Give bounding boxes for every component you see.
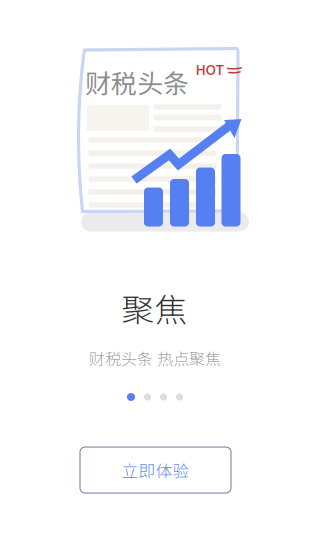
staticText: HOT [195,59,224,79]
staticText: 立即体验 [121,458,189,482]
staticText: 财税头条 [85,63,189,101]
staticText: 财税头条 热点聚焦 [89,346,221,370]
button[interactable]: 立即体验 [80,447,231,493]
staticText: 聚焦 [121,284,187,332]
